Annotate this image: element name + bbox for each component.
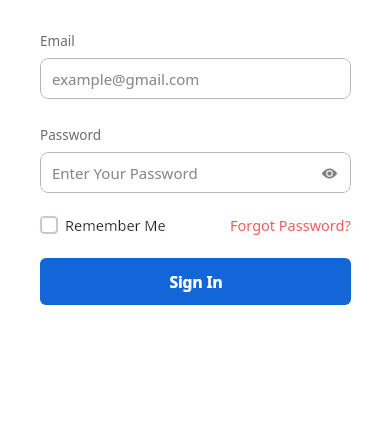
staticText: example@gmail.com bbox=[52, 69, 200, 89]
button[interactable]: Sign In bbox=[40, 258, 351, 305]
button[interactable]: Show password bbox=[318, 162, 340, 184]
staticText: Remember Me bbox=[65, 215, 166, 235]
staticText: Email bbox=[40, 32, 75, 50]
button[interactable]: example@gmail.com bbox=[40, 58, 351, 99]
staticText: Password bbox=[40, 126, 102, 144]
button[interactable]: Enter Your Password bbox=[40, 152, 351, 193]
button[interactable]: Forgot Password? bbox=[230, 215, 351, 235]
button[interactable]: Remember Me bbox=[40, 215, 170, 235]
staticText: Enter Your Password bbox=[52, 163, 198, 183]
staticText: Forgot Password? bbox=[230, 215, 351, 235]
staticText: Sign In bbox=[169, 271, 223, 292]
